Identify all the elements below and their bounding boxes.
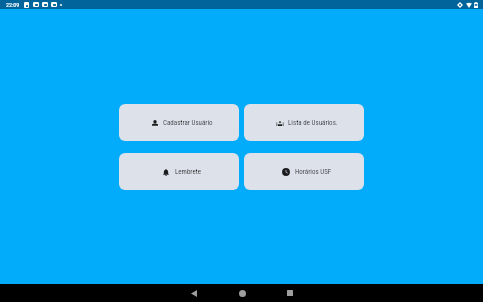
button[interactable]: Back: [170, 284, 218, 302]
button[interactable]: Lembrete: [119, 153, 239, 190]
staticText: Horários USF: [295, 168, 332, 176]
button[interactable]: Cadastrar Usuário: [119, 104, 239, 141]
staticText: 22:09: [6, 1, 20, 8]
button[interactable]: Horários USF: [244, 153, 364, 190]
button[interactable]: Lista de Usuários.: [244, 104, 364, 141]
button[interactable]: Recent apps: [266, 284, 314, 302]
staticText: Lista de Usuários.: [288, 119, 338, 127]
staticText: Lembrete: [175, 168, 202, 176]
staticText: Cadastrar Usuário: [163, 119, 213, 127]
button[interactable]: Home: [218, 284, 266, 302]
